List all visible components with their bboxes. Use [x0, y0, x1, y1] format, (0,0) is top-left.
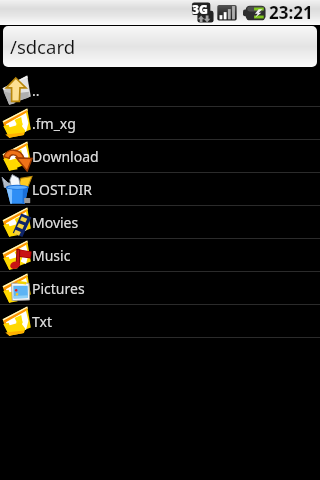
staticText: Txt: [32, 312, 52, 331]
staticText: LOST.DIR: [32, 180, 93, 199]
staticText: Download: [32, 147, 99, 166]
button[interactable]: .fm_xg: [0, 107, 320, 140]
staticText: Movies: [32, 213, 79, 232]
button[interactable]: Download: [0, 140, 320, 173]
button[interactable]: /sdcard: [3, 26, 317, 67]
staticText: 3G: [192, 1, 208, 17]
staticText: 23:21: [269, 1, 313, 24]
staticText: Music: [32, 246, 71, 265]
staticText: ..: [32, 81, 40, 100]
staticText: .fm_xg: [32, 114, 76, 133]
staticText: /sdcard: [10, 34, 76, 59]
button[interactable]: Txt: [0, 305, 320, 338]
button[interactable]: ..: [0, 74, 320, 107]
button[interactable]: Music: [0, 239, 320, 272]
staticText: Pictures: [32, 279, 85, 298]
button[interactable]: LOST.DIR: [0, 173, 320, 206]
button[interactable]: Movies: [0, 206, 320, 239]
button[interactable]: Pictures: [0, 272, 320, 305]
